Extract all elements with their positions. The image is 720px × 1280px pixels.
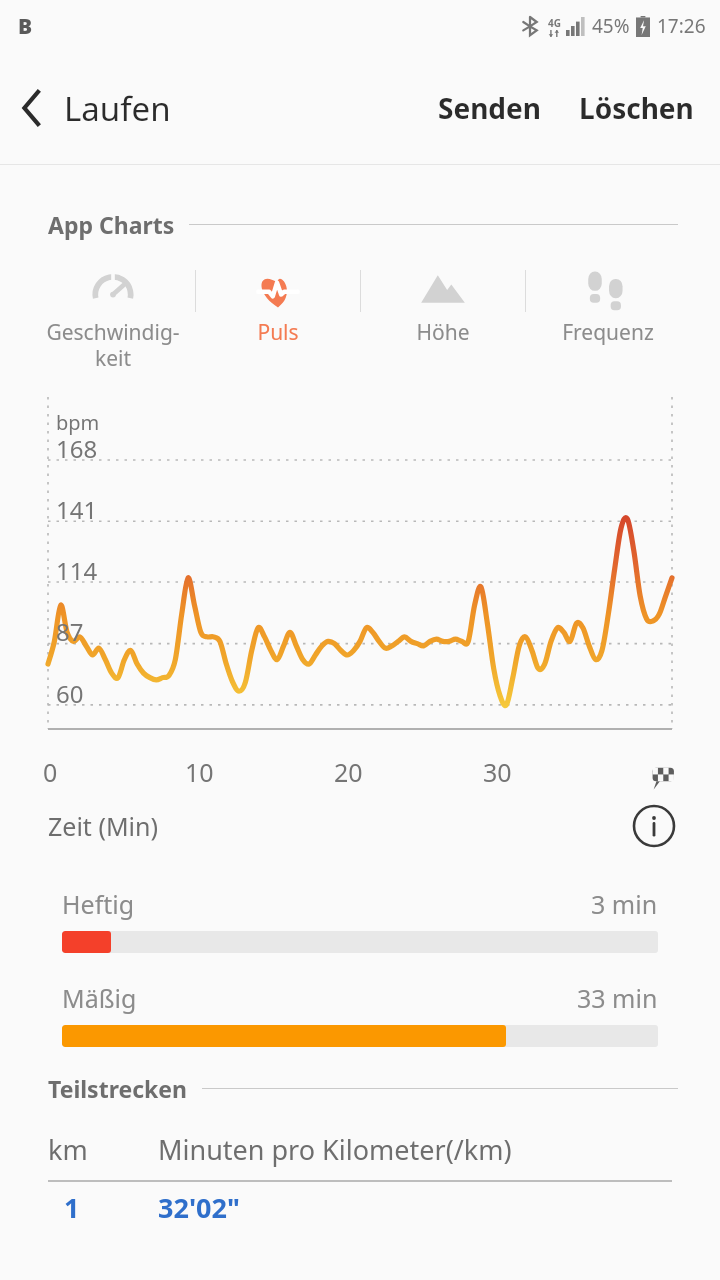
- staticText: 114: [56, 554, 98, 587]
- button[interactable]: Frequenz: [526, 262, 690, 351]
- staticText: 3 min: [591, 887, 658, 921]
- button[interactable]: Geschwindig- keit: [30, 262, 195, 377]
- staticText: App Charts: [48, 209, 175, 240]
- staticText: bpm: [56, 409, 100, 436]
- staticText: 33 min: [577, 981, 658, 1015]
- button[interactable]: Laufen: [64, 86, 171, 131]
- staticText: Frequenz: [562, 318, 654, 347]
- button[interactable]: Info: [630, 802, 678, 850]
- staticText: 10: [185, 755, 214, 789]
- staticText: Puls: [257, 318, 299, 347]
- staticText: Teilstrecken: [48, 1073, 188, 1104]
- button[interactable]: Puls: [196, 262, 360, 351]
- staticText: Mäßig: [62, 981, 137, 1015]
- staticText: 60: [56, 677, 84, 710]
- button[interactable]: Höhe: [361, 262, 525, 351]
- staticText: 168: [56, 432, 98, 465]
- staticText: Höhe: [416, 318, 470, 347]
- staticText: 32'02": [158, 1189, 240, 1226]
- staticText: Zeit (Min): [48, 809, 158, 843]
- staticText: km: [48, 1131, 158, 1168]
- button[interactable]: Mäßig: [0, 981, 720, 1047]
- staticText: 20: [334, 755, 363, 789]
- staticText: 1: [64, 1189, 158, 1226]
- staticText: 4G: [548, 16, 561, 30]
- staticText: 0: [43, 755, 58, 789]
- staticText: 45%: [592, 13, 630, 39]
- staticText: 30: [483, 755, 512, 789]
- button[interactable]: Zurück: [0, 76, 64, 140]
- staticText: 87: [56, 615, 84, 648]
- staticText: Heftig: [62, 887, 135, 921]
- button[interactable]: Löschen: [569, 79, 704, 137]
- button[interactable]: 1: [48, 1182, 672, 1232]
- staticText: 17:26: [657, 13, 706, 39]
- staticText: 141: [56, 493, 98, 526]
- staticText: Geschwindig- keit: [46, 318, 180, 373]
- staticText: Minuten pro Kilometer(/km): [158, 1131, 512, 1168]
- button[interactable]: Senden: [428, 79, 551, 137]
- button[interactable]: Heftig: [0, 887, 720, 953]
- staticText: B: [18, 12, 33, 41]
